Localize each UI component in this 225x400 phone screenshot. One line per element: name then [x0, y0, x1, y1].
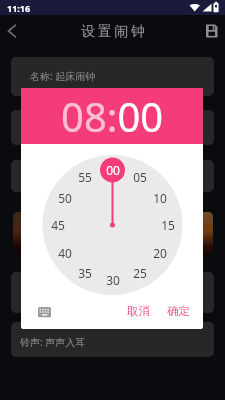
staticText: 10 — [153, 190, 167, 206]
staticText: 20 — [153, 245, 167, 261]
staticText: 确定 — [167, 304, 190, 318]
staticText: 11:16 — [7, 2, 31, 14]
button[interactable] — [2, 21, 22, 41]
staticText: 08:00 — [61, 89, 164, 143]
staticText: 设置闹钟 — [80, 23, 146, 40]
staticText: 45 — [51, 217, 65, 233]
button[interactable]: 确定 — [159, 301, 197, 321]
button[interactable]: 取消 — [119, 301, 157, 321]
staticText: 55 — [78, 169, 92, 185]
staticText: 名称: 起床闹钟 — [30, 69, 96, 83]
staticText: 25 — [133, 265, 147, 281]
button[interactable] — [202, 21, 222, 41]
staticText: 取消 — [127, 304, 150, 318]
staticText: 00 — [106, 162, 120, 178]
button[interactable]: 铃声: 声声入耳 — [11, 322, 214, 357]
button[interactable] — [38, 307, 52, 318]
staticText: 30 — [106, 272, 120, 288]
staticText: 铃声: 声声入耳 — [20, 335, 86, 349]
staticText: 15 — [161, 217, 175, 233]
button[interactable]: 名称: 起床闹钟 — [11, 57, 214, 96]
staticText: 35 — [78, 265, 92, 281]
staticText: 40 — [58, 245, 72, 261]
staticText: 05 — [133, 169, 147, 185]
staticText: 50 — [58, 190, 72, 206]
